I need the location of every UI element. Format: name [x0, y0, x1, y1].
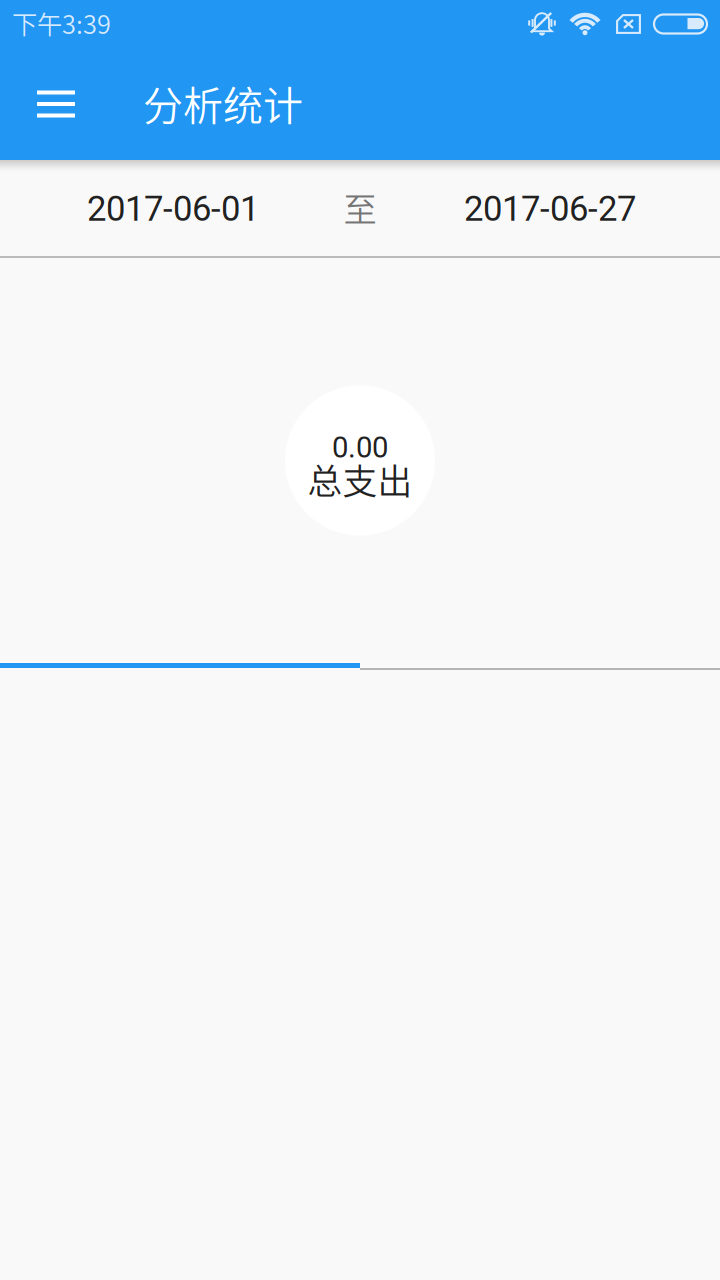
button[interactable]: 至 [340, 160, 380, 256]
staticText: 下午3:39 [12, 5, 111, 41]
button[interactable]: Menu [18, 64, 94, 144]
staticText: 0.00 [332, 430, 388, 465]
staticText: 2017-06-27 [464, 189, 636, 229]
staticText: 总支出 [307, 454, 412, 505]
staticText: 分析统计 [143, 74, 303, 132]
button[interactable]: 2017-06-01 [0, 160, 340, 256]
staticText: 至 [343, 183, 376, 231]
button[interactable]: 2017-06-27 [380, 160, 718, 256]
staticText: 2017-06-01 [87, 189, 259, 229]
